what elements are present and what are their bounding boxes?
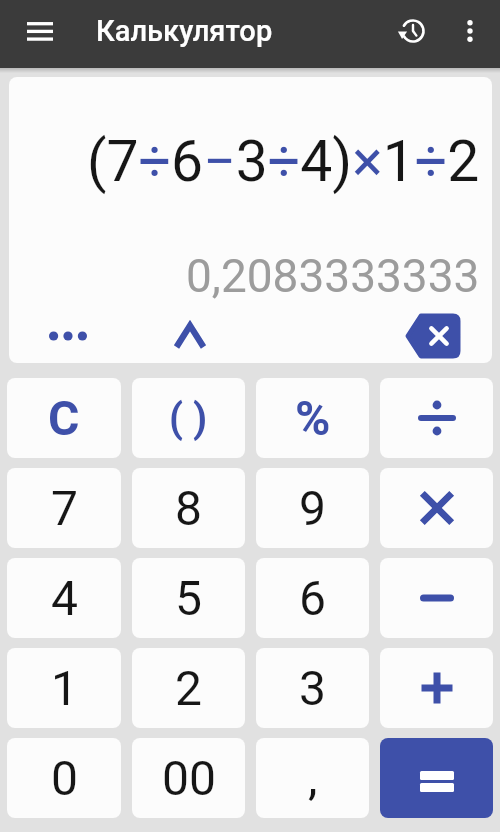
button[interactable]: [16, 7, 64, 55]
button[interactable]: [49, 316, 87, 356]
button[interactable]: [408, 316, 458, 356]
staticText: (7÷6−3÷4)×1÷2: [87, 128, 480, 195]
staticText: 5: [175, 570, 202, 626]
button[interactable]: 2: [132, 648, 245, 728]
button[interactable]: 1: [7, 648, 121, 728]
staticText: %: [295, 390, 331, 446]
staticText: 8: [175, 480, 202, 536]
staticText: Калькулятор: [96, 14, 273, 48]
button[interactable]: 4: [7, 558, 121, 638]
button[interactable]: [380, 648, 493, 728]
staticText: C: [48, 390, 80, 446]
staticText: 0,2083333333: [186, 249, 480, 303]
button[interactable]: 00: [132, 738, 245, 818]
button[interactable]: 3: [256, 648, 369, 728]
button[interactable]: 0: [7, 738, 121, 818]
button[interactable]: [380, 738, 493, 818]
staticText: 3: [299, 660, 326, 716]
button[interactable]: ,: [256, 738, 369, 818]
button[interactable]: 5: [132, 558, 245, 638]
button[interactable]: [380, 558, 493, 638]
staticText: 6: [299, 570, 326, 626]
button[interactable]: C: [7, 378, 121, 458]
button[interactable]: %: [256, 378, 369, 458]
button[interactable]: [388, 7, 436, 55]
staticText: 0: [51, 750, 78, 806]
button[interactable]: 7: [7, 468, 121, 548]
button[interactable]: ( ): [132, 378, 245, 458]
button[interactable]: [380, 468, 493, 548]
button[interactable]: 6: [256, 558, 369, 638]
button[interactable]: [174, 316, 206, 356]
staticText: 1: [51, 660, 78, 716]
staticText: ( ): [169, 395, 208, 442]
staticText: 4: [51, 570, 78, 626]
button[interactable]: 8: [132, 468, 245, 548]
button[interactable]: 9: [256, 468, 369, 548]
button[interactable]: [380, 378, 493, 458]
staticText: 00: [162, 750, 216, 806]
button[interactable]: [446, 7, 494, 55]
staticText: 9: [299, 480, 326, 536]
staticText: ,: [308, 749, 318, 805]
staticText: 7: [51, 480, 78, 536]
staticText: 2: [175, 660, 202, 716]
